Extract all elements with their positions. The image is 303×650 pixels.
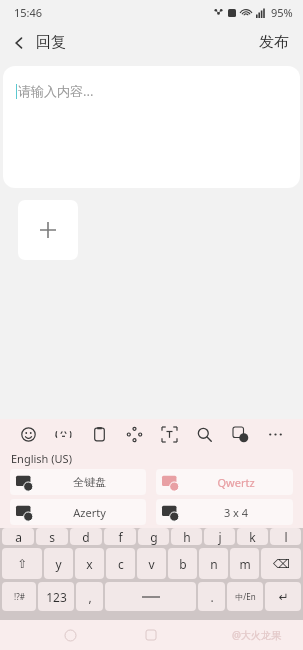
staticText: d	[82, 529, 90, 545]
button[interactable]: b	[168, 548, 197, 579]
button[interactable]: .	[198, 582, 225, 611]
button[interactable]: y	[44, 548, 73, 579]
staticText: 95%	[271, 5, 293, 20]
staticText: x	[86, 556, 93, 572]
staticText: f	[118, 529, 123, 545]
button[interactable]: 发布	[245, 27, 303, 58]
button[interactable]: l	[270, 528, 301, 545]
staticText: 请输入内容...	[18, 82, 94, 100]
button[interactable]: Translate	[228, 422, 252, 446]
staticText: h	[183, 529, 191, 545]
button[interactable]: !?#	[2, 582, 36, 611]
staticText: @大火龙果	[232, 628, 281, 642]
staticText: ,	[88, 589, 92, 605]
button[interactable]: Handwriting	[122, 422, 146, 446]
staticText: !?#	[14, 591, 25, 602]
button[interactable]: a	[2, 528, 34, 545]
staticText: g	[150, 529, 158, 545]
staticText: ⇧	[17, 557, 28, 571]
button[interactable]: Back	[59, 624, 81, 646]
button[interactable]: Back	[0, 29, 74, 56]
button[interactable]: ↵	[265, 582, 301, 611]
button[interactable]: Home	[140, 624, 162, 646]
staticText: Qwertz	[179, 475, 293, 490]
staticText: y	[55, 556, 62, 572]
button[interactable]: 3 x 4	[156, 499, 293, 525]
staticText: English (US)	[11, 451, 72, 466]
staticText: c	[118, 556, 124, 572]
button[interactable]: ⌫	[261, 548, 301, 579]
button[interactable]: Kaomoji	[51, 422, 75, 446]
staticText: 中/En	[235, 591, 256, 602]
button[interactable]: 全键盘	[10, 469, 146, 495]
other: Back	[12, 36, 26, 50]
button[interactable]: k	[237, 528, 268, 545]
button[interactable]: Search	[192, 422, 216, 446]
button[interactable]: m	[230, 548, 259, 579]
staticText: l	[284, 529, 288, 545]
staticText: b	[179, 556, 187, 572]
staticText: 15:46	[14, 5, 43, 20]
staticText: 全键盘	[33, 475, 146, 489]
staticText: m	[239, 556, 251, 572]
button[interactable]: n	[199, 548, 228, 579]
button[interactable]: x	[75, 548, 104, 579]
button[interactable]: j	[204, 528, 235, 545]
staticText: 3 x 4	[179, 505, 293, 520]
staticText: 123	[46, 589, 67, 605]
staticText: 回复	[36, 33, 66, 52]
button[interactable]: f	[104, 528, 136, 545]
staticText: Azerty	[33, 505, 146, 520]
button[interactable]: More options	[263, 422, 287, 446]
button[interactable]: ,	[76, 582, 103, 611]
button[interactable]: d	[70, 528, 102, 545]
button[interactable]: Qwertz	[156, 469, 293, 495]
button[interactable]: h	[171, 528, 202, 545]
staticText: v	[148, 556, 155, 572]
button[interactable]: Text extract	[157, 422, 181, 446]
button[interactable]: Add photo	[18, 200, 78, 260]
staticText: n	[210, 556, 218, 572]
button[interactable]: 请输入内容...	[3, 66, 300, 188]
button[interactable]: Emoji	[16, 422, 40, 446]
staticText: s	[49, 529, 55, 545]
staticText: a	[15, 529, 22, 545]
staticText: j	[218, 529, 222, 545]
button[interactable]: Clipboard	[87, 422, 111, 446]
button[interactable]: s	[36, 528, 68, 545]
button[interactable]: v	[137, 548, 166, 579]
button[interactable]: c	[106, 548, 135, 579]
staticText: ⌫	[273, 557, 290, 571]
button[interactable]: Azerty	[10, 499, 146, 525]
button[interactable]: ⇧	[2, 548, 42, 579]
staticText: k	[249, 529, 256, 545]
staticText: ↵	[278, 590, 289, 604]
button[interactable]	[105, 582, 196, 611]
button[interactable]: g	[138, 528, 169, 545]
button[interactable]: 中/En	[227, 582, 263, 611]
staticText: .	[210, 589, 214, 605]
staticText: 发布	[259, 33, 289, 52]
button[interactable]: 123	[38, 582, 74, 611]
